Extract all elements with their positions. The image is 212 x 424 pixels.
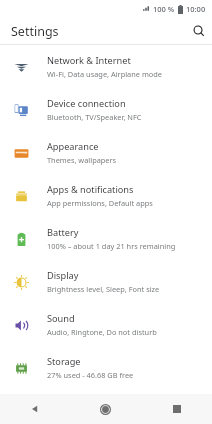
- staticText: Audio, Ringtone, Do not disturb: [47, 327, 157, 337]
- staticText: 100% – about 1 day 21 hrs remaining: [47, 241, 176, 251]
- staticText: Device connection: [47, 97, 126, 110]
- staticText: Apps & notifications: [47, 183, 134, 196]
- button[interactable]: Back: [0, 394, 70, 424]
- button[interactable]: Sound: [0, 303, 212, 346]
- staticText: Battery: [47, 226, 79, 239]
- button[interactable]: Display: [0, 260, 212, 303]
- staticText: Themes, wallpapers: [47, 155, 117, 165]
- staticText: Wi-Fi, Data usage, Airplane mode: [47, 69, 162, 79]
- button[interactable]: Home: [70, 394, 141, 424]
- staticText: 10:00: [186, 4, 206, 14]
- staticText: App permissions, Default apps: [47, 198, 153, 208]
- button[interactable]: Device connection: [0, 88, 212, 131]
- staticText: 27% used - 46.68 GB free: [47, 370, 134, 380]
- staticText: Storage: [47, 355, 81, 368]
- button[interactable]: Recents: [141, 394, 212, 424]
- staticText: Brightness level, Sleep, Font size: [47, 284, 160, 294]
- button[interactable]: Battery: [0, 217, 212, 260]
- button[interactable]: Network & Internet: [0, 45, 212, 88]
- staticText: Network & Internet: [47, 54, 131, 67]
- staticText: 100 %: [153, 4, 175, 14]
- staticText: Bluetooth, TV/Speaker, NFC: [47, 112, 142, 122]
- button[interactable]: Apps & notifications: [0, 174, 212, 217]
- staticText: Sound: [47, 312, 75, 325]
- staticText: Appearance: [47, 140, 99, 153]
- staticText: Display: [47, 269, 79, 282]
- staticText: Settings: [11, 23, 59, 40]
- button[interactable]: Appearance: [0, 131, 212, 174]
- button[interactable]: Storage: [0, 346, 212, 389]
- button[interactable]: Search: [186, 18, 212, 44]
